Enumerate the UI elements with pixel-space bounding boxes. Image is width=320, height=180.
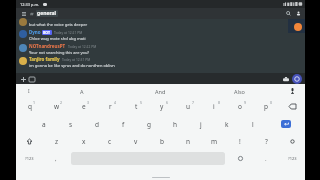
staticText: p [264,102,268,111]
button[interactable]: Backspace [279,98,305,115]
staticText: ?123 [25,156,34,161]
button[interactable]: v [123,133,149,150]
button[interactable]: 1 [16,98,43,115]
button[interactable]: 5 [123,98,149,115]
staticText: 0 [270,100,273,105]
staticText: j [200,120,202,129]
button[interactable]: g [136,115,162,133]
button[interactable]: Dyno [16,29,305,41]
staticText: o [238,102,242,111]
button[interactable]: Emoji [227,150,253,167]
staticText: im gonna be like syrus and do nonthen ob… [29,63,115,68]
staticText: y [160,102,164,111]
staticText: l [252,120,254,129]
staticText: d [95,120,99,129]
staticText: general [37,10,57,17]
button[interactable]: Camera [282,75,290,83]
button[interactable]: Search [284,9,293,18]
staticText: ! [239,137,241,146]
staticText: 6 [166,100,169,105]
button[interactable]: ? [253,133,279,150]
button[interactable]: Send [292,74,302,84]
button[interactable]: Shift [16,133,43,150]
button[interactable]: f [110,115,136,133]
button[interactable]: Add attachment [19,75,27,83]
staticText: a [42,120,46,129]
staticText: x [82,137,86,146]
staticText: ? [265,137,268,146]
staticText: i [213,102,215,111]
staticText: 3 [87,100,90,105]
button[interactable]: l [240,115,266,133]
staticText: Chloe wug mote shd ubg mati [29,36,86,41]
button[interactable]: Members [294,9,303,18]
staticText: c [108,137,112,146]
staticText: z [55,137,59,146]
button[interactable]: Clipboard [16,84,42,98]
button[interactable]: Backspace [279,133,305,150]
button[interactable]: k [214,115,240,133]
button[interactable]: ?123 [279,150,305,167]
button[interactable]: A [42,84,121,98]
staticText: Today at 12:21 PM [54,30,83,34]
button[interactable]: Attached image [288,19,305,33]
button[interactable]: Enter [281,120,291,128]
button[interactable]: 4 [97,98,123,115]
staticText: I [28,88,30,95]
button[interactable]: 9 [227,98,253,115]
button[interactable]: 2 [43,98,70,115]
button[interactable]: h [162,115,188,133]
button[interactable]: d [84,115,110,133]
staticText: s [69,120,73,129]
button[interactable]: m [201,133,227,150]
button[interactable]: Voice input [279,84,305,98]
button[interactable]: Menu [20,10,28,18]
button[interactable]: 0 [253,98,279,115]
button[interactable]: but what the voice gets deeper [16,19,305,29]
button[interactable]: s [57,115,84,133]
staticText: n [186,137,191,146]
staticText: . [265,155,267,163]
staticText: u [186,102,191,111]
button[interactable]: 7 [175,98,201,115]
button[interactable]: c [97,133,123,150]
button[interactable]: 8 [201,98,227,115]
staticText: t [135,102,138,111]
staticText: h [173,120,178,129]
staticText: Also [234,88,245,95]
button[interactable]: j [188,115,214,133]
button[interactable]: And [121,84,200,98]
staticText: 4 [114,100,117,105]
staticText: b [160,137,164,146]
button[interactable]: GIF [28,75,36,83]
button[interactable]: ?123 [16,150,43,167]
staticText: ?123 [288,156,297,161]
staticText: 5 [140,100,143,105]
staticText: , [55,155,57,163]
staticText: q [28,102,32,111]
button[interactable]: NOTnandreusPT [16,43,305,55]
button[interactable]: a [30,115,57,133]
staticText: g [147,120,151,129]
button[interactable]: n [175,133,201,150]
staticText: BOT [43,30,51,35]
button[interactable]: Tanjiro family [16,56,305,68]
staticText: Dyno [29,29,41,35]
staticText: 8 [218,100,221,105]
staticText: 2 [60,100,63,105]
staticText: 9 [244,100,247,105]
staticText: 12:33 p.m. [20,2,40,7]
staticText: Today at 12:31 PM [62,57,91,61]
staticText: A [80,88,84,95]
button[interactable]: 3 [70,98,97,115]
button[interactable]: x [70,133,97,150]
staticText: m [211,137,218,146]
button[interactable]: 6 [149,98,175,115]
button[interactable]: ! [227,133,253,150]
button[interactable]: , [43,150,69,167]
button[interactable]: z [43,133,70,150]
button[interactable]: b [149,133,175,150]
button[interactable]: Also [200,84,279,98]
